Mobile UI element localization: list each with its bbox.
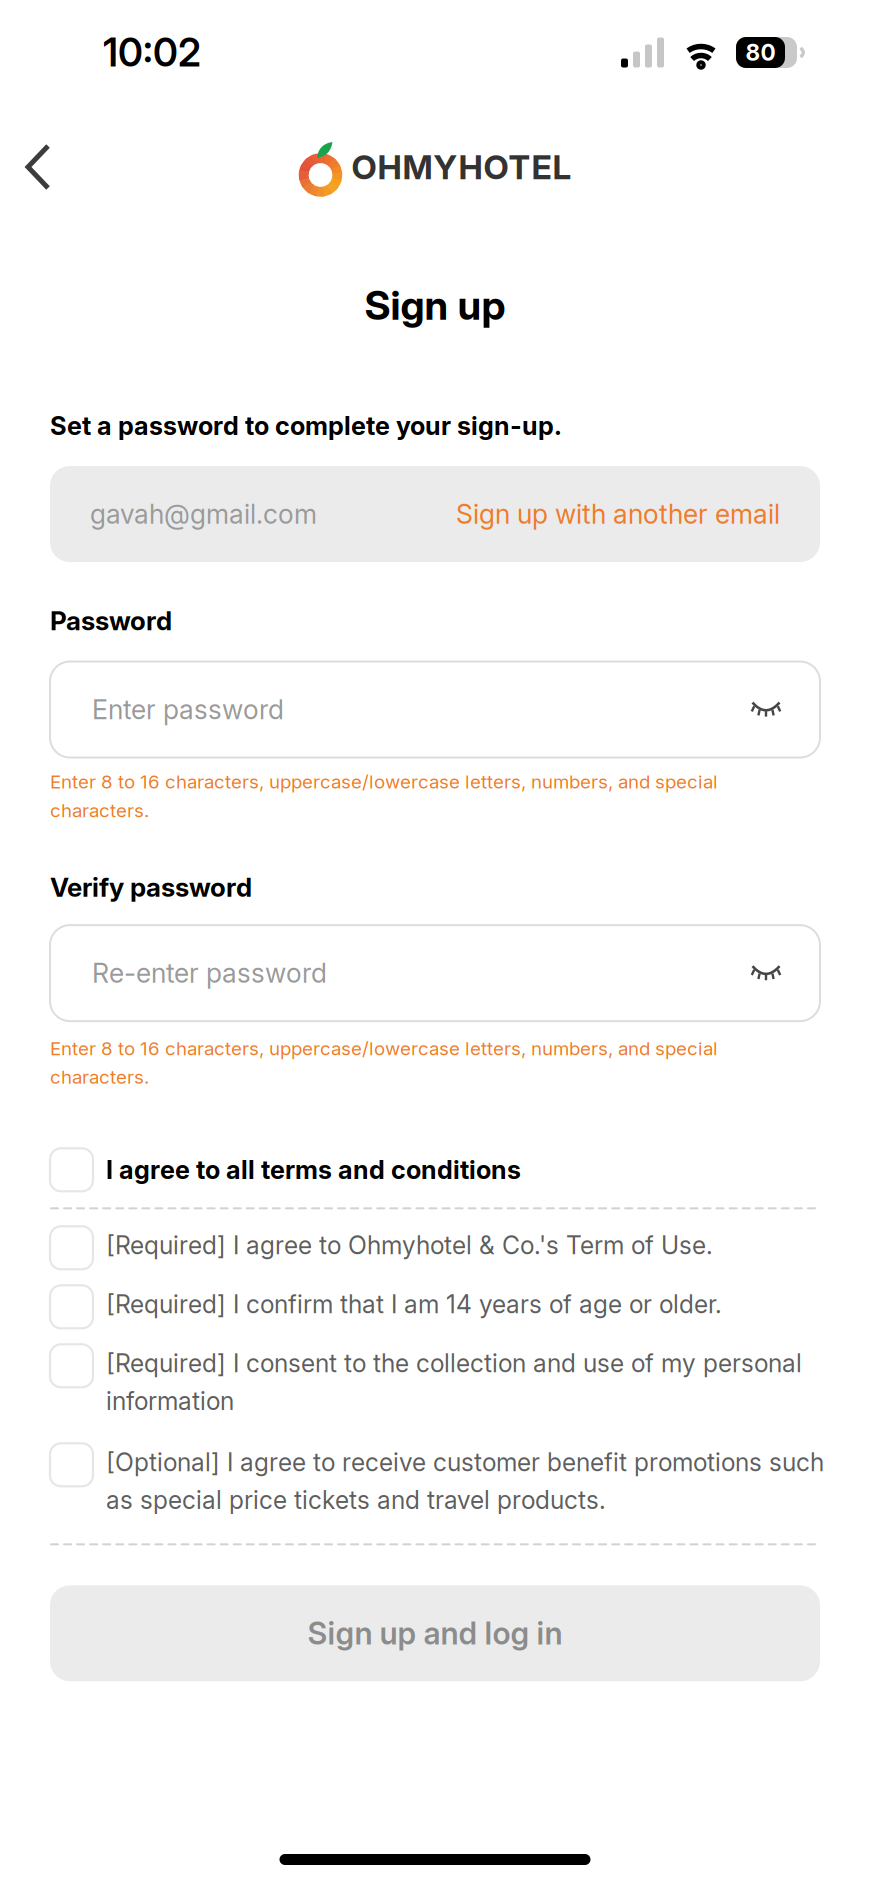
staticText: [Required] I confirm that I am 14 years … (106, 1289, 722, 1319)
button[interactable]: Sign up and log in (50, 1585, 820, 1681)
staticText: Enter 8 to 16 characters, uppercase/lowe… (50, 770, 718, 822)
button[interactable]: [Required] I confirm that I am 14 years … (50, 1277, 820, 1336)
staticText: Enter 8 to 16 characters, uppercase/lowe… (50, 1037, 718, 1088)
staticText: 80 (745, 39, 775, 66)
staticText: [Required] I consent to the collection a… (106, 1348, 802, 1416)
staticText: I agree to all terms and conditions (106, 1154, 521, 1185)
staticText: OHMYHOTEL (351, 147, 571, 187)
staticText: Sign up with another email (456, 498, 780, 530)
staticText: [Optional] I agree to receive customer b… (106, 1447, 824, 1515)
staticText: Sign up (364, 281, 505, 329)
staticText: 10:02 (103, 29, 201, 76)
staticText: Enter password (92, 693, 284, 726)
button[interactable]: Back (0, 122, 76, 212)
staticText: Verify password (50, 872, 252, 903)
staticText: Password (50, 605, 172, 636)
staticText: gavah@gmail.com (90, 498, 317, 530)
button[interactable]: [Required] I consent to the collection a… (50, 1336, 820, 1435)
button[interactable]: I agree to all terms and conditions (50, 1148, 820, 1191)
button[interactable]: Show verify password (737, 947, 795, 1000)
staticText: Re-enter password (92, 957, 327, 989)
staticText: Sign up and log in (307, 1615, 562, 1652)
button[interactable]: gavah@gmail.com (50, 466, 820, 562)
button[interactable]: [Required] I agree to Ohmyhotel & Co.'s … (50, 1218, 820, 1277)
button[interactable]: Show password (737, 683, 795, 736)
button[interactable]: [Optional] I agree to receive customer b… (50, 1435, 820, 1534)
staticText: Set a password to complete your sign-up. (50, 410, 562, 441)
staticText: [Required] I agree to Ohmyhotel & Co.'s … (106, 1230, 713, 1260)
